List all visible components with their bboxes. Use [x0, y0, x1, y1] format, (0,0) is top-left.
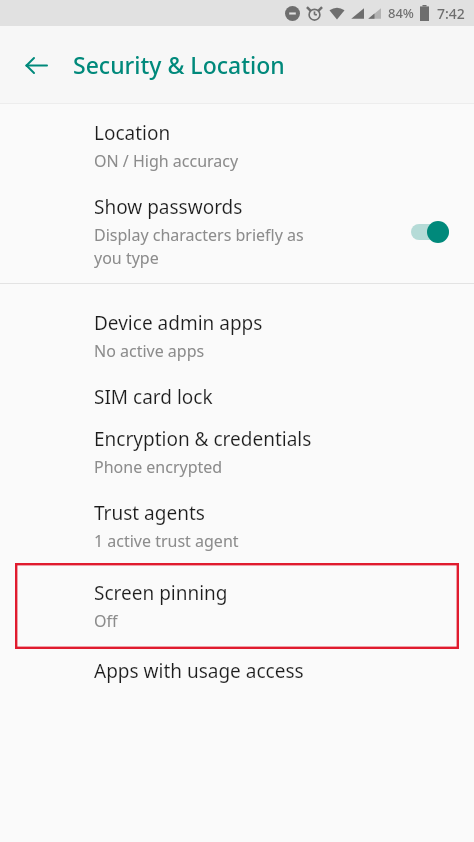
- staticText: 7:42: [437, 4, 465, 23]
- button[interactable]: Device admin apps: [0, 310, 474, 362]
- staticText: Location: [94, 120, 171, 146]
- button[interactable]: SIM card lock: [0, 384, 474, 410]
- button[interactable]: Location: [0, 120, 474, 172]
- staticText: Security & Location: [73, 49, 285, 80]
- staticText: ON / High accuracy: [94, 150, 239, 172]
- staticText: SIM card lock: [94, 384, 213, 410]
- staticText: Show passwords: [94, 194, 243, 220]
- button[interactable]: Navigate up: [12, 41, 60, 89]
- button[interactable]: Show passwords: [406, 214, 460, 250]
- staticText: Phone encrypted: [94, 456, 223, 478]
- button[interactable]: Trust agents: [0, 500, 474, 552]
- staticText: Display characters briefly as you type: [94, 224, 304, 269]
- staticText: Encryption & credentials: [94, 426, 312, 452]
- button[interactable]: Screen pinning: [15, 563, 459, 649]
- staticText: Apps with usage access: [94, 658, 304, 684]
- staticText: 84%: [388, 4, 414, 22]
- button[interactable]: Show passwords: [0, 194, 474, 269]
- staticText: Device admin apps: [94, 310, 263, 336]
- staticText: Trust agents: [94, 500, 205, 526]
- staticText: 1 active trust agent: [94, 530, 239, 552]
- staticText: No active apps: [94, 340, 205, 362]
- staticText: Off: [94, 610, 118, 632]
- button[interactable]: Apps with usage access: [0, 658, 474, 684]
- staticText: Screen pinning: [94, 580, 228, 606]
- button[interactable]: Encryption & credentials: [0, 426, 474, 478]
